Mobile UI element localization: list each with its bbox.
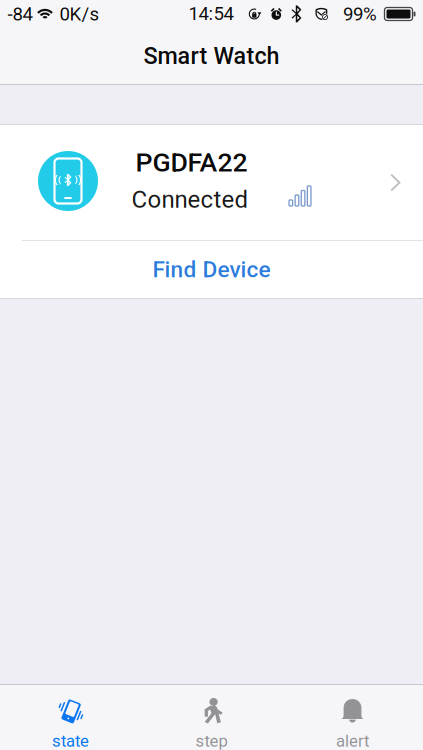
- button[interactable]: Find Device: [0, 241, 423, 298]
- staticText: Smart Watch: [143, 42, 279, 70]
- button[interactable]: PGDFA22: [0, 125, 423, 240]
- staticText: PGDFA22: [135, 147, 247, 178]
- staticText: Find Device: [152, 256, 270, 283]
- button[interactable]: alert: [282, 685, 423, 750]
- staticText: alert: [336, 731, 369, 750]
- staticText: 99%: [343, 3, 377, 25]
- staticText: -84: [7, 3, 32, 25]
- staticText: step: [195, 731, 227, 750]
- staticText: 0K/s: [59, 3, 99, 25]
- button[interactable]: step: [141, 685, 282, 750]
- staticText: state: [52, 731, 89, 750]
- staticText: 14:54: [188, 3, 233, 24]
- button[interactable]: state: [0, 685, 141, 750]
- staticText: Connected: [131, 185, 248, 213]
